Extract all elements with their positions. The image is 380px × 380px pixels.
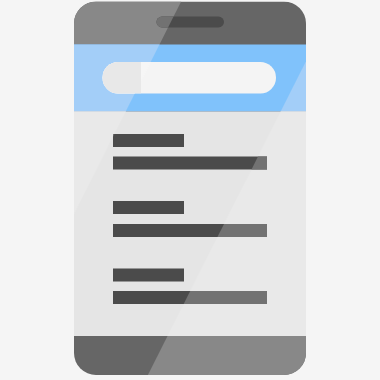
button[interactable]: Search: [103, 62, 277, 94]
button[interactable]: Article 1: [113, 134, 267, 169]
button[interactable]: Article 2: [113, 201, 267, 236]
button[interactable]: Article 3: [113, 268, 267, 303]
